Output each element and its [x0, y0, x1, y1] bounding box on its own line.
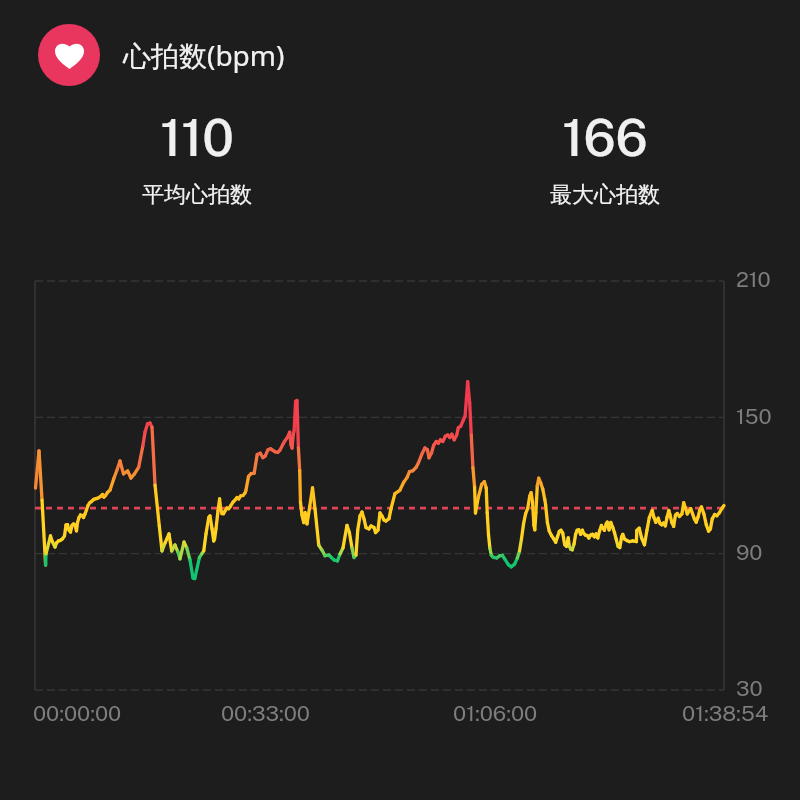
- staticText: 110: [160, 108, 234, 168]
- staticText: 166: [562, 108, 648, 168]
- staticText: 01:06:00: [453, 701, 538, 726]
- other: Heart rate: [38, 24, 100, 86]
- staticText: 00:33:00: [221, 701, 310, 726]
- staticText: 平均心拍数: [142, 181, 252, 209]
- staticText: 90: [736, 540, 763, 565]
- staticText: 最大心拍数: [550, 181, 660, 209]
- button[interactable]: 110: [77, 108, 317, 209]
- staticText: 01:38:54: [682, 701, 769, 726]
- button[interactable]: Heart rate: [38, 24, 285, 86]
- staticText: 210: [736, 267, 771, 292]
- button[interactable]: 166: [485, 108, 725, 209]
- staticText: 心拍数(bpm): [123, 36, 285, 74]
- staticText: 30: [736, 676, 763, 701]
- staticText: 00:00:00: [33, 701, 122, 726]
- staticText: 150: [736, 404, 772, 429]
